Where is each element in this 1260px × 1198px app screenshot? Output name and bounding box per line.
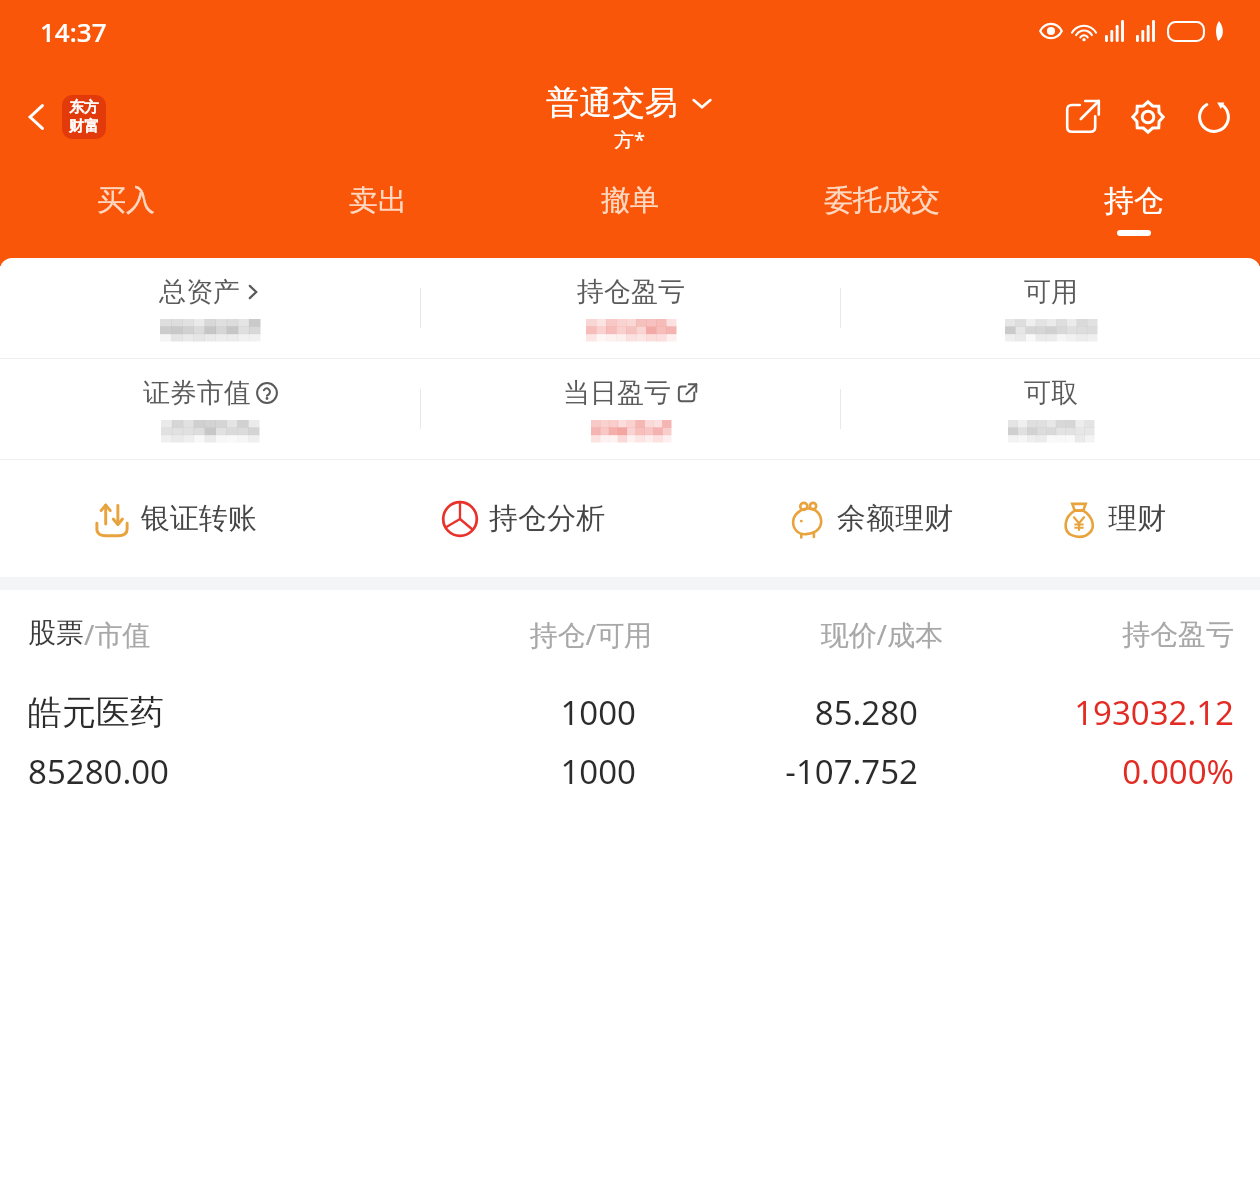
staticText: 持仓分析 (489, 500, 605, 537)
staticText: 193032.12 (918, 690, 1234, 735)
staticText: -107.752 (636, 749, 918, 794)
staticText: 买入 (97, 182, 155, 219)
button[interactable]: 委托成交 (756, 172, 1008, 258)
button[interactable]: 当日盈亏 (421, 359, 840, 459)
button[interactable]: 买入 (0, 172, 252, 258)
staticText: 东方 (69, 98, 99, 117)
button[interactable]: 理财 (1044, 460, 1260, 577)
button[interactable]: 持仓盈亏 (421, 258, 840, 358)
staticText: 余额理财 (837, 500, 953, 537)
staticText: 当日盈亏 (563, 376, 671, 410)
button[interactable]: Refresh (1190, 93, 1238, 141)
button[interactable]: 卖出 (252, 172, 504, 258)
staticText: 1000 (354, 690, 636, 735)
button[interactable]: 总资产 (0, 258, 420, 358)
staticText: 卖出 (349, 182, 407, 219)
staticText: 可用 (1024, 275, 1078, 309)
staticText: 1000 (354, 749, 636, 794)
staticText: 可取 (1024, 376, 1078, 410)
button[interactable]: 银证转账 (0, 460, 348, 577)
staticText: 方* (614, 126, 646, 153)
staticText: 总资产 (159, 275, 240, 309)
staticText: 持仓 (1104, 182, 1164, 220)
staticText: 委托成交 (824, 182, 940, 219)
button[interactable]: 持仓 (1008, 172, 1260, 258)
button[interactable]: 可用 (841, 258, 1260, 358)
button[interactable]: 余额理财 (696, 460, 1044, 577)
staticText: 理财 (1108, 500, 1166, 537)
staticText: 普通交易 (546, 82, 678, 124)
staticText: 皓元医药 (28, 691, 354, 734)
staticText: 85280.00 (28, 749, 354, 794)
staticText: 14:37 (40, 14, 107, 49)
staticText: 持仓盈亏 (577, 275, 685, 309)
staticText: 持仓盈亏 (943, 617, 1234, 652)
button[interactable]: Back (16, 89, 112, 145)
staticText: 撤单 (601, 182, 659, 219)
button[interactable]: 可取 (841, 359, 1260, 459)
button[interactable]: Share (1058, 93, 1106, 141)
button[interactable]: 证券市值 (0, 359, 420, 459)
staticText: 股票 (28, 615, 84, 650)
staticText: 证券市值 (143, 376, 251, 410)
staticText: /市值 (84, 615, 151, 653)
staticText: 85.280 (636, 690, 918, 735)
staticText: 财富 (69, 117, 99, 136)
button[interactable]: 普通交易 (546, 82, 714, 153)
staticText: 现价/成本 (652, 615, 943, 653)
button[interactable]: Settings (1124, 93, 1172, 141)
staticText: 0.000% (918, 749, 1234, 794)
button[interactable]: 皓元医药 (0, 678, 1260, 810)
button[interactable]: 撤单 (504, 172, 756, 258)
staticText: 持仓/可用 (361, 615, 652, 653)
button[interactable]: 持仓分析 (348, 460, 696, 577)
staticText: 银证转账 (141, 500, 257, 537)
